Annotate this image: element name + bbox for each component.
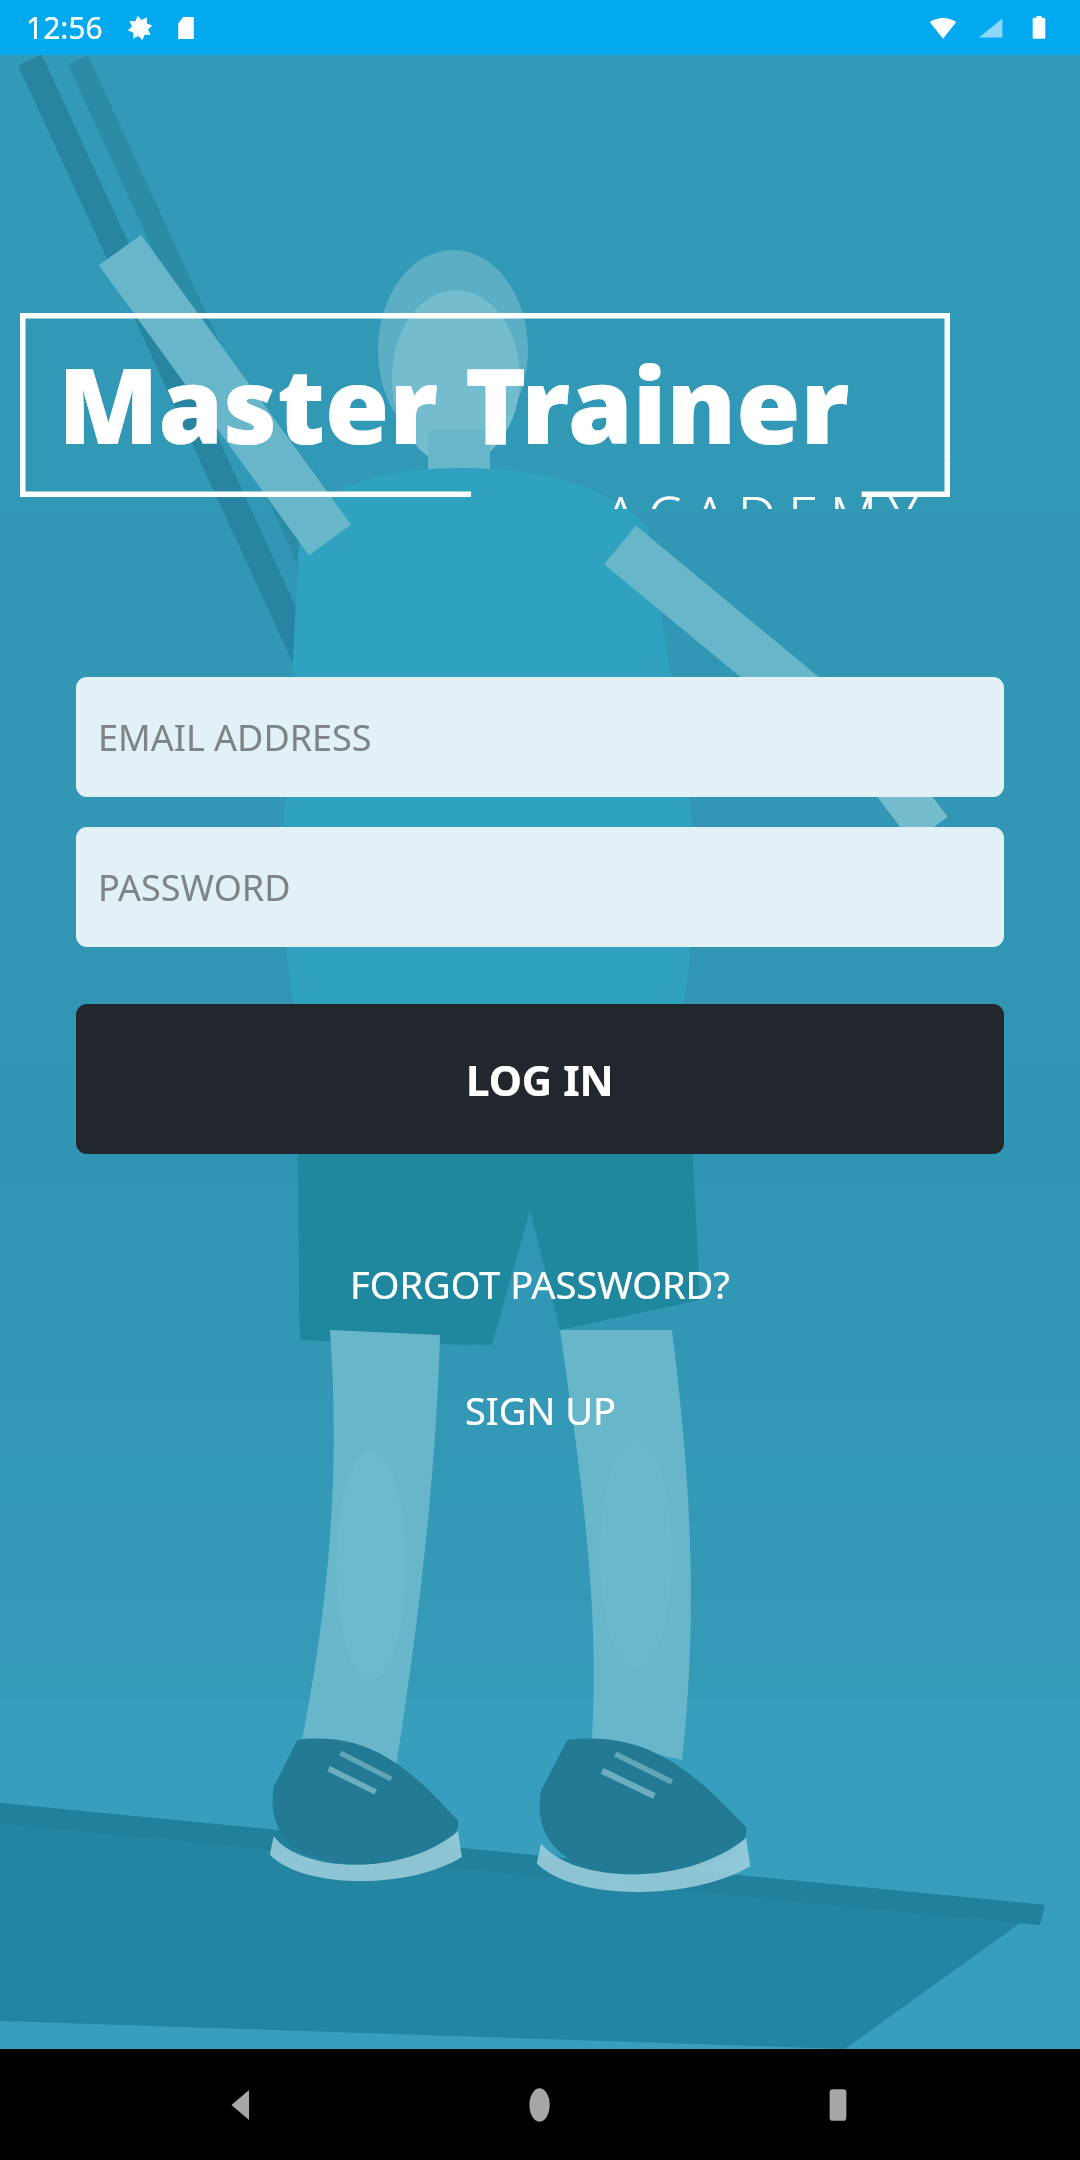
button[interactable]: Back — [186, 2049, 298, 2160]
staticText: EMAIL ADDRESS — [98, 713, 372, 762]
staticText: SIGN UP — [465, 1384, 616, 1436]
button[interactable]: EMAIL ADDRESS — [76, 677, 1004, 797]
staticText: 12:56 — [26, 7, 103, 48]
staticText: FORGOT PASSWORD? — [350, 1258, 730, 1310]
button[interactable]: Recent apps — [782, 2049, 894, 2160]
button[interactable]: LOG IN — [76, 1004, 1004, 1154]
staticText: ACADEMY — [604, 477, 930, 509]
button[interactable]: SIGN UP — [0, 1378, 1080, 1442]
staticText: PASSWORD — [98, 863, 291, 912]
button[interactable]: PASSWORD — [76, 827, 1004, 947]
staticText: Master Trainer — [58, 333, 850, 475]
button[interactable]: Home — [484, 2049, 596, 2160]
button[interactable]: FORGOT PASSWORD? — [0, 1252, 1080, 1316]
staticText: LOG IN — [466, 1051, 614, 1108]
